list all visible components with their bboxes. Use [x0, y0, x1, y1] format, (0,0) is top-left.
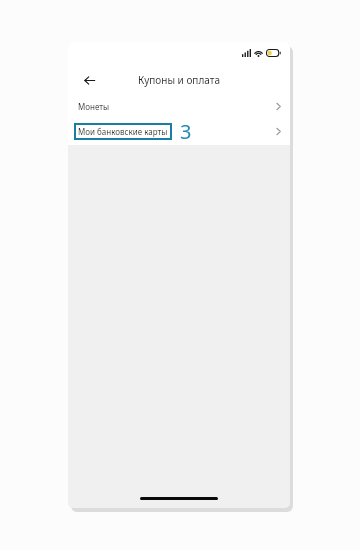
- staticText: Монеты: [78, 101, 110, 112]
- button[interactable]: Back: [77, 68, 101, 92]
- button[interactable]: Мои банковские карты: [68, 117, 290, 145]
- staticText: Купоны и оплата: [138, 73, 220, 87]
- button[interactable]: Монеты: [68, 96, 290, 117]
- staticText: Мои банковские карты: [78, 126, 168, 137]
- staticText: 3: [180, 118, 192, 145]
